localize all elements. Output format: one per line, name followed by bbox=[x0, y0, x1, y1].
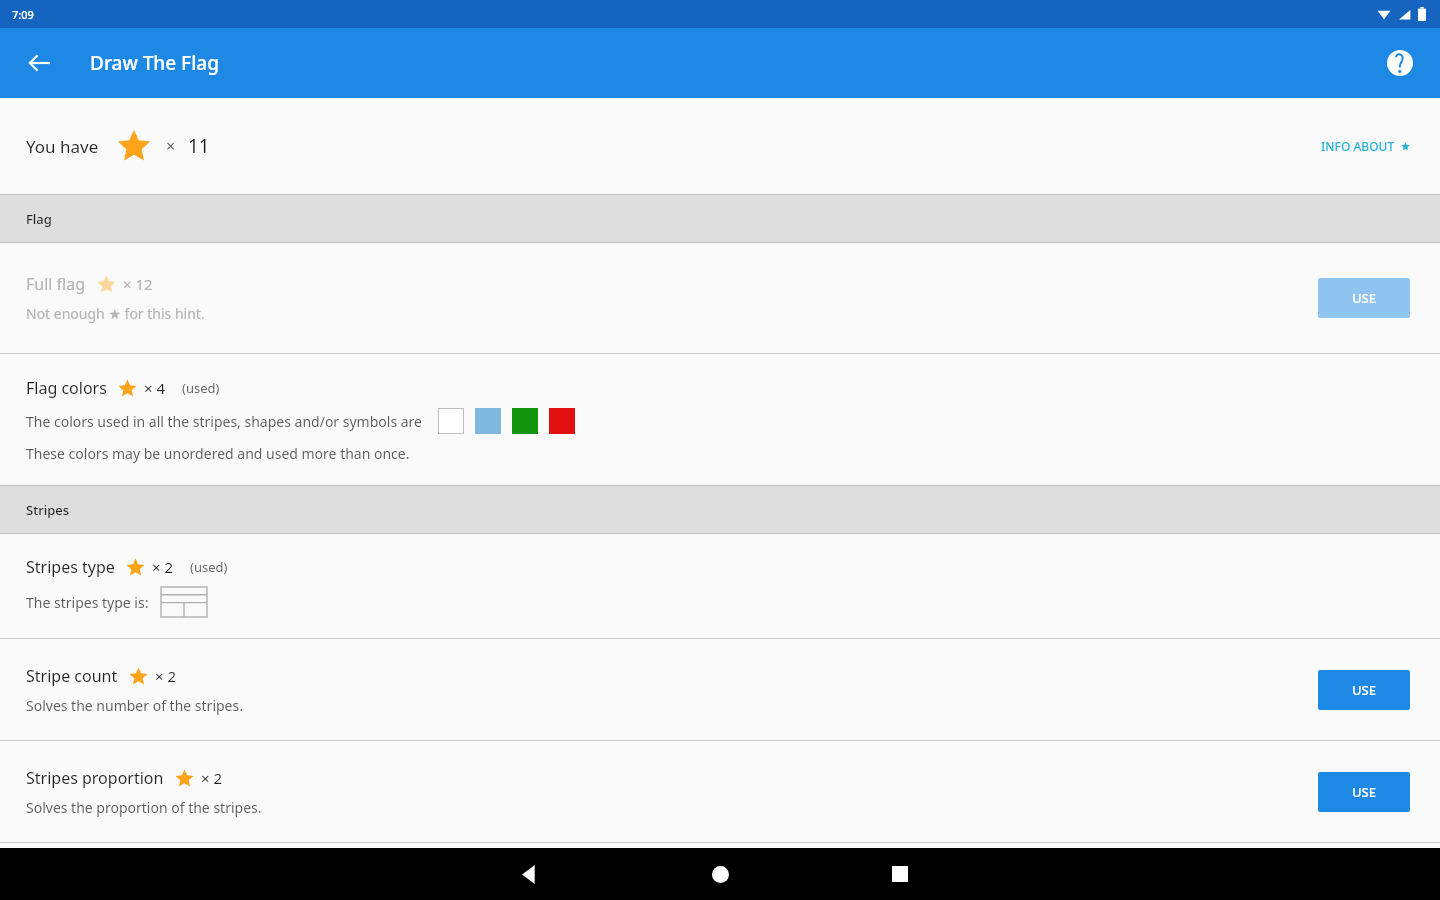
staticText: These colors may be unordered and used m… bbox=[26, 444, 410, 463]
staticText: (used) bbox=[182, 379, 220, 397]
button[interactable]: Home bbox=[692, 848, 748, 900]
staticText: Stripes type bbox=[26, 556, 115, 578]
staticText: Stripes bbox=[26, 501, 69, 519]
staticText: You have bbox=[26, 135, 99, 158]
staticText: Flag colors bbox=[26, 377, 107, 399]
button[interactable]: USE bbox=[1318, 278, 1410, 318]
staticText: Stripe count bbox=[26, 665, 118, 687]
staticText: The stripes type is: bbox=[26, 593, 149, 612]
button[interactable]: Recent apps bbox=[872, 848, 928, 900]
staticText: Solves the number of the stripes. bbox=[26, 696, 243, 715]
staticText: (used) bbox=[190, 558, 228, 576]
staticText: USE bbox=[1352, 681, 1376, 699]
button[interactable]: Help bbox=[1376, 39, 1424, 87]
button[interactable]: Stripes proportion bbox=[0, 741, 1440, 842]
button[interactable]: INFO ABOUT bbox=[1313, 130, 1418, 162]
button[interactable]: USE bbox=[1318, 772, 1410, 812]
button[interactable]: Flag colors bbox=[0, 354, 1440, 485]
staticText: × 2 bbox=[152, 557, 174, 577]
staticText: × 4 bbox=[144, 378, 166, 398]
button[interactable]: USE bbox=[1318, 670, 1410, 710]
staticText: USE bbox=[1352, 289, 1376, 307]
button[interactable]: Back bbox=[502, 848, 558, 900]
staticText: 7:09 bbox=[12, 7, 34, 22]
button[interactable]: Full flag bbox=[0, 243, 1440, 353]
staticText: × 12 bbox=[123, 274, 153, 294]
staticText: × bbox=[166, 135, 176, 157]
button[interactable]: Stripes type bbox=[0, 534, 1440, 638]
staticText: Not enough ★ for this hint. bbox=[26, 304, 205, 323]
staticText: × 2 bbox=[155, 666, 177, 686]
staticText: Full flag bbox=[26, 273, 86, 295]
button[interactable]: Back bbox=[14, 37, 66, 89]
staticText: 11 bbox=[188, 133, 210, 159]
staticText: × 2 bbox=[201, 768, 223, 788]
staticText: Solves the proportion of the stripes. bbox=[26, 798, 262, 817]
button[interactable]: Stripe count bbox=[0, 639, 1440, 740]
staticText: The colors used in all the stripes, shap… bbox=[26, 412, 423, 431]
staticText: Flag bbox=[26, 210, 52, 228]
staticText: Stripes proportion bbox=[26, 767, 164, 789]
staticText: Draw The Flag bbox=[90, 50, 219, 76]
staticText: INFO ABOUT bbox=[1321, 138, 1395, 154]
staticText: USE bbox=[1352, 783, 1376, 801]
